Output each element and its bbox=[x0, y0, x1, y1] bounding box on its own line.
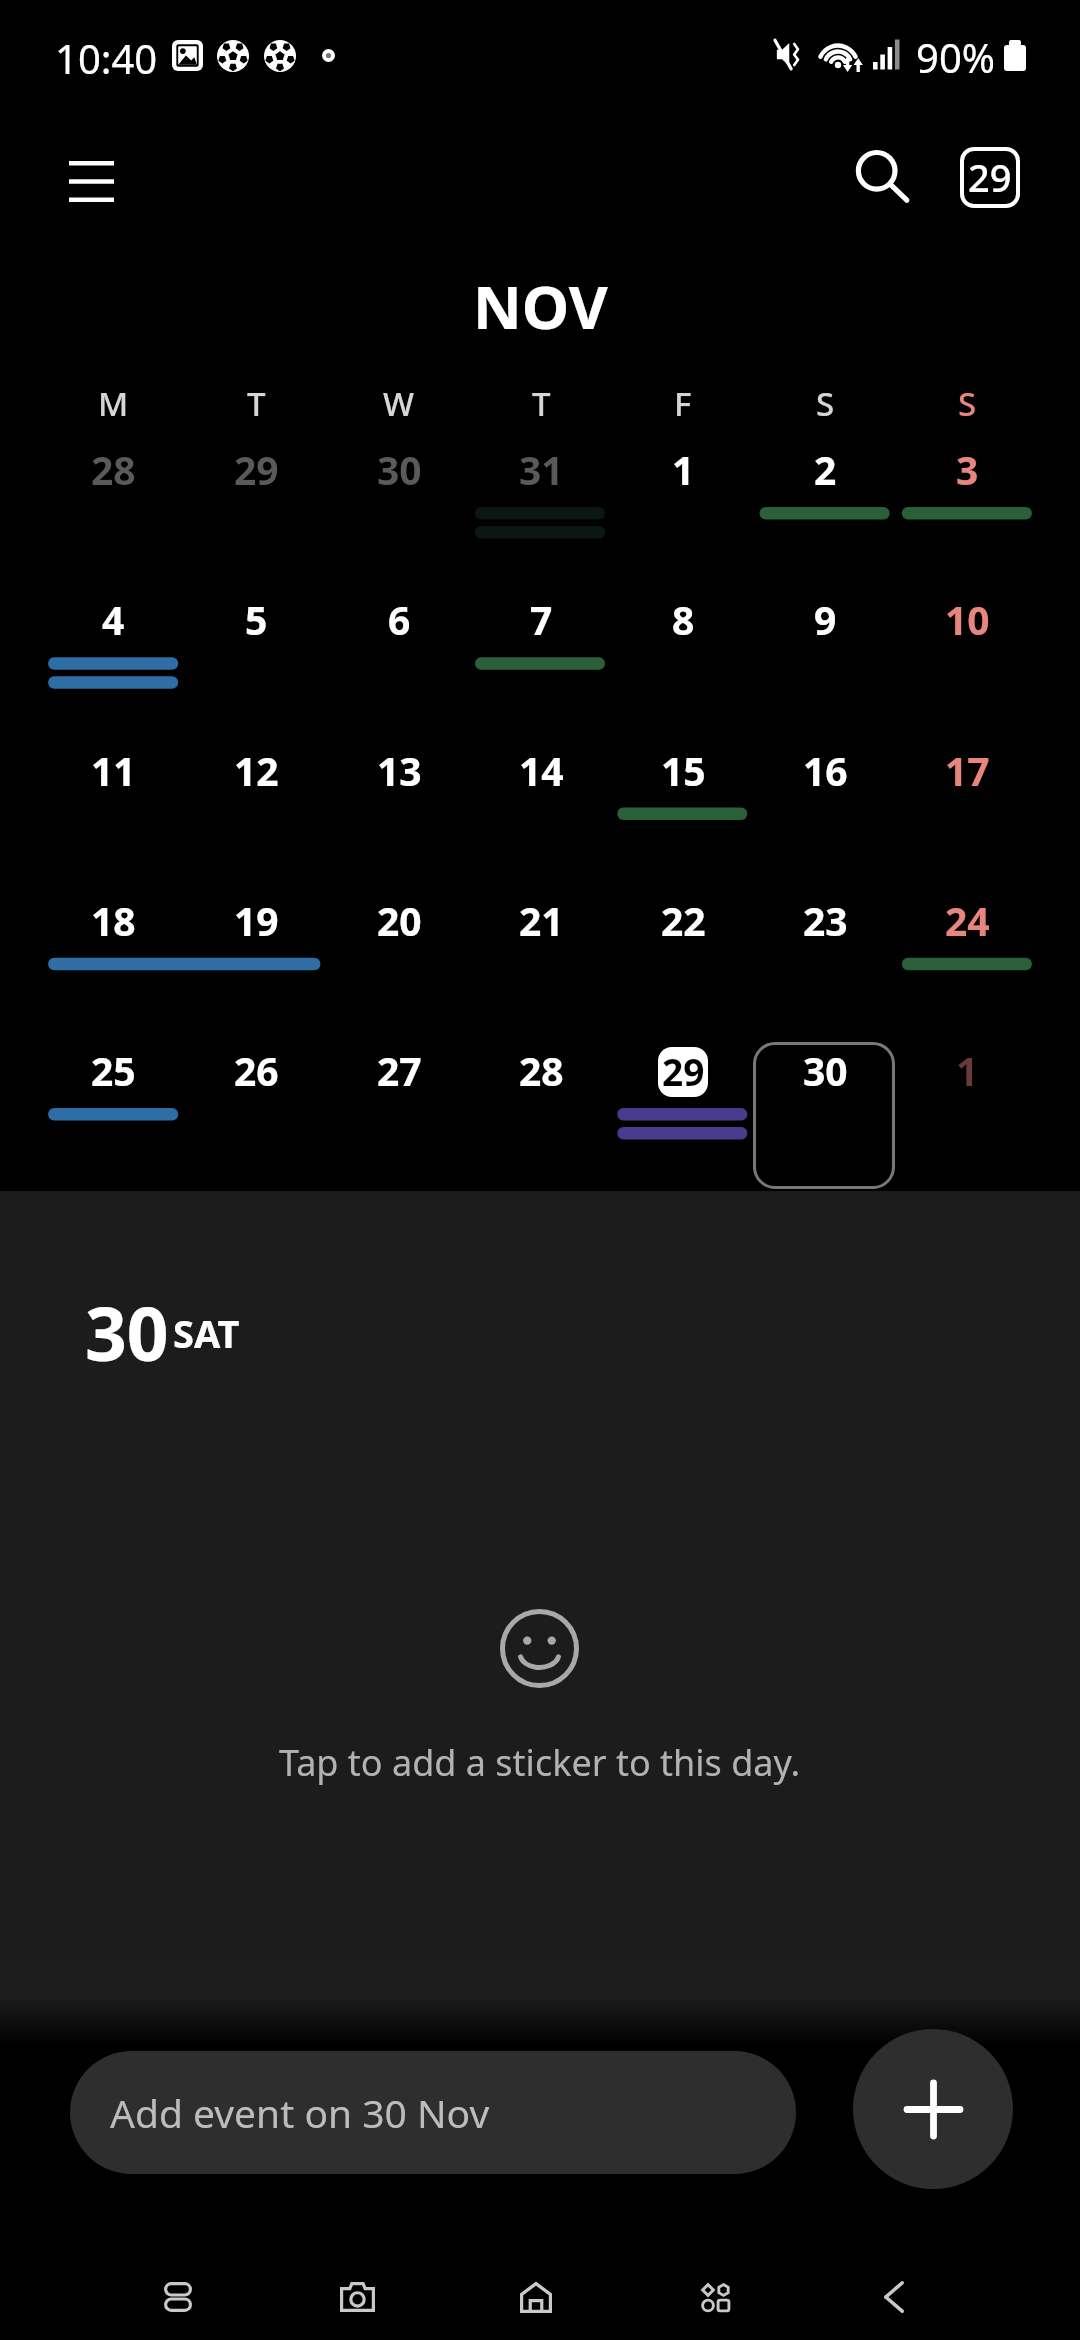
button[interactable]: 16 bbox=[754, 742, 896, 889]
button[interactable]: Camera bbox=[287, 2249, 427, 2340]
staticText: 7 bbox=[530, 593, 553, 646]
staticText: 19 bbox=[234, 894, 279, 947]
staticText: 9 bbox=[814, 593, 837, 646]
button[interactable]: 28 bbox=[470, 1042, 612, 1189]
staticText: 26 bbox=[234, 1044, 279, 1097]
button[interactable]: Recent apps bbox=[108, 2249, 248, 2340]
button[interactable]: 24 bbox=[896, 892, 1038, 1039]
button[interactable]: 1 bbox=[896, 1042, 1038, 1189]
staticText: 17 bbox=[945, 744, 990, 797]
button[interactable]: 8 bbox=[612, 591, 754, 738]
staticText: NOV bbox=[473, 265, 608, 347]
staticText: 16 bbox=[803, 744, 848, 797]
staticText: 29 bbox=[662, 1047, 705, 1096]
button[interactable]: 29 bbox=[612, 1042, 754, 1189]
button[interactable]: 3 bbox=[896, 441, 1038, 588]
staticText: 27 bbox=[377, 1044, 422, 1097]
staticText: 5 bbox=[245, 593, 268, 646]
staticText: 13 bbox=[377, 744, 422, 797]
button[interactable]: 15 bbox=[612, 742, 754, 889]
button[interactable]: 2 bbox=[754, 441, 896, 588]
staticText: 30 bbox=[803, 1044, 848, 1097]
button[interactable]: 29 bbox=[185, 441, 328, 588]
staticText: 31 bbox=[519, 443, 564, 496]
button[interactable]: 19 bbox=[185, 892, 328, 1039]
button[interactable]: 17 bbox=[896, 742, 1038, 889]
button[interactable]: 4 bbox=[42, 591, 185, 738]
staticText: 1 bbox=[956, 1044, 979, 1097]
button[interactable]: 12 bbox=[185, 742, 328, 889]
button[interactable]: 1 bbox=[612, 441, 754, 588]
staticText: 8 bbox=[672, 593, 695, 646]
staticText: 15 bbox=[661, 744, 706, 797]
button[interactable]: 18 bbox=[42, 892, 185, 1039]
staticText: 2 bbox=[814, 443, 837, 496]
staticText: 21 bbox=[519, 894, 564, 947]
button[interactable]: 13 bbox=[328, 742, 470, 889]
staticText: 14 bbox=[519, 744, 564, 797]
button[interactable]: 30 bbox=[328, 441, 470, 588]
button[interactable]: Open navigation menu bbox=[41, 131, 141, 231]
button[interactable]: Create event bbox=[853, 2029, 1013, 2189]
staticText: 10 bbox=[945, 593, 990, 646]
button[interactable]: 7 bbox=[470, 591, 612, 738]
staticText: 29 bbox=[968, 151, 1012, 203]
staticText: 4 bbox=[102, 593, 125, 646]
staticText: W bbox=[383, 381, 415, 417]
button[interactable]: 25 bbox=[42, 1042, 185, 1189]
staticText: 11 bbox=[91, 744, 136, 797]
button[interactable]: 27 bbox=[328, 1042, 470, 1189]
button[interactable]: Go to today bbox=[960, 147, 1020, 208]
button[interactable]: 14 bbox=[470, 742, 612, 889]
staticText: 22 bbox=[661, 894, 706, 947]
staticText: T bbox=[532, 381, 551, 417]
button[interactable]: 9 bbox=[754, 591, 896, 738]
staticText: 18 bbox=[91, 894, 136, 947]
staticText: 29 bbox=[234, 443, 279, 496]
button[interactable]: 23 bbox=[754, 892, 896, 1039]
staticText: S bbox=[958, 381, 977, 417]
button[interactable]: 20 bbox=[328, 892, 470, 1039]
staticText: S bbox=[816, 381, 835, 417]
button[interactable]: 5 bbox=[185, 591, 328, 738]
button[interactable]: 10 bbox=[896, 591, 1038, 738]
staticText: Add event on 30 Nov bbox=[110, 2086, 490, 2139]
staticText: 12 bbox=[234, 744, 279, 797]
staticText: 6 bbox=[388, 593, 411, 646]
button[interactable]: 26 bbox=[185, 1042, 328, 1189]
staticText: 30 bbox=[377, 443, 422, 496]
staticText: M bbox=[98, 381, 129, 417]
button[interactable]: 28 bbox=[42, 441, 185, 588]
button[interactable]: Add event on 30 Nov bbox=[70, 2051, 796, 2174]
staticText: 24 bbox=[945, 894, 990, 947]
staticText: SAT bbox=[173, 1307, 240, 1359]
staticText: Tap to add a sticker to this day. bbox=[279, 1738, 801, 1787]
staticText: 30 bbox=[85, 1283, 169, 1382]
button[interactable]: Add a sticker to this day bbox=[494, 1603, 584, 1693]
staticText: 28 bbox=[91, 443, 136, 496]
staticText: 23 bbox=[803, 894, 848, 947]
button[interactable]: Back bbox=[824, 2249, 964, 2340]
staticText: 28 bbox=[519, 1044, 564, 1097]
staticText: 90% bbox=[916, 30, 995, 84]
staticText: 10:40 bbox=[55, 31, 158, 85]
staticText: 25 bbox=[91, 1044, 136, 1097]
button[interactable]: Home bbox=[466, 2249, 606, 2340]
button[interactable]: 31 bbox=[470, 441, 612, 588]
staticText: 20 bbox=[377, 894, 422, 947]
button[interactable]: Apps bbox=[645, 2249, 785, 2340]
button[interactable]: 6 bbox=[328, 591, 470, 738]
button[interactable]: Search bbox=[821, 118, 933, 230]
staticText: 1 bbox=[672, 443, 695, 496]
button[interactable]: 11 bbox=[42, 742, 185, 889]
staticText: T bbox=[247, 381, 266, 417]
button[interactable]: 30 bbox=[754, 1042, 896, 1189]
staticText: F bbox=[674, 381, 692, 417]
staticText: 3 bbox=[956, 443, 979, 496]
button[interactable]: 21 bbox=[470, 892, 612, 1039]
button[interactable]: 22 bbox=[612, 892, 754, 1039]
